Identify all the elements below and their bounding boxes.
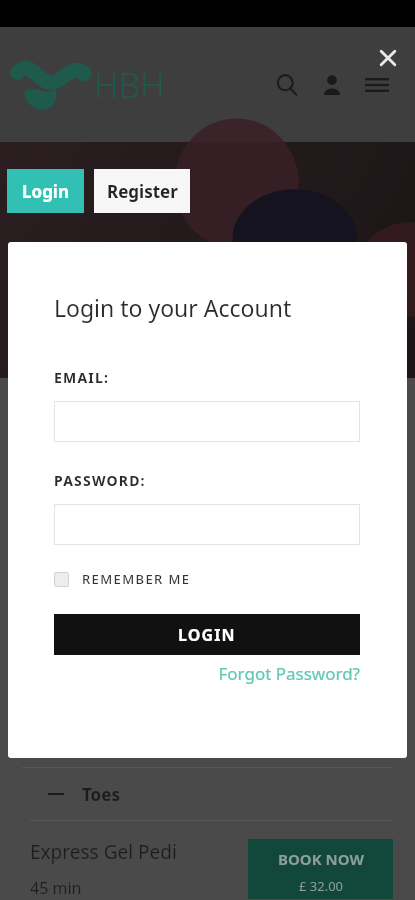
button[interactable]: Password field — [54, 504, 360, 545]
staticText: REMEMBER ME — [82, 570, 191, 588]
button[interactable]: LOGIN — [54, 614, 360, 655]
button[interactable]: Search — [269, 67, 305, 103]
staticText: BOOK NOW — [278, 849, 364, 869]
staticText: Register — [107, 180, 178, 203]
button[interactable]: Register — [94, 169, 190, 213]
button[interactable]: BOOK NOW — [248, 839, 393, 899]
button[interactable]: Account — [314, 67, 350, 103]
button[interactable]: Close — [373, 43, 403, 73]
button[interactable]: Login — [7, 169, 84, 213]
staticText: Express Gel Pedi — [30, 839, 177, 865]
button[interactable]: REMEMBER ME — [54, 570, 191, 588]
staticText: HBH — [94, 62, 165, 108]
button[interactable]: Email field — [54, 401, 360, 442]
staticText: LOGIN — [178, 624, 236, 646]
staticText: £ 32.00 — [299, 877, 344, 895]
button[interactable]: Menu — [359, 67, 395, 103]
staticText: Login to your Account — [54, 292, 292, 323]
staticText: 45 min — [30, 877, 82, 899]
button[interactable]: Forgot Password? — [218, 662, 360, 685]
button[interactable]: Toes — [22, 768, 393, 820]
staticText: EMAIL: — [54, 368, 110, 387]
staticText: Toes — [82, 783, 120, 806]
staticText: PASSWORD: — [54, 471, 146, 490]
staticText: Login — [22, 180, 70, 203]
staticText: Forgot Password? — [218, 662, 360, 685]
